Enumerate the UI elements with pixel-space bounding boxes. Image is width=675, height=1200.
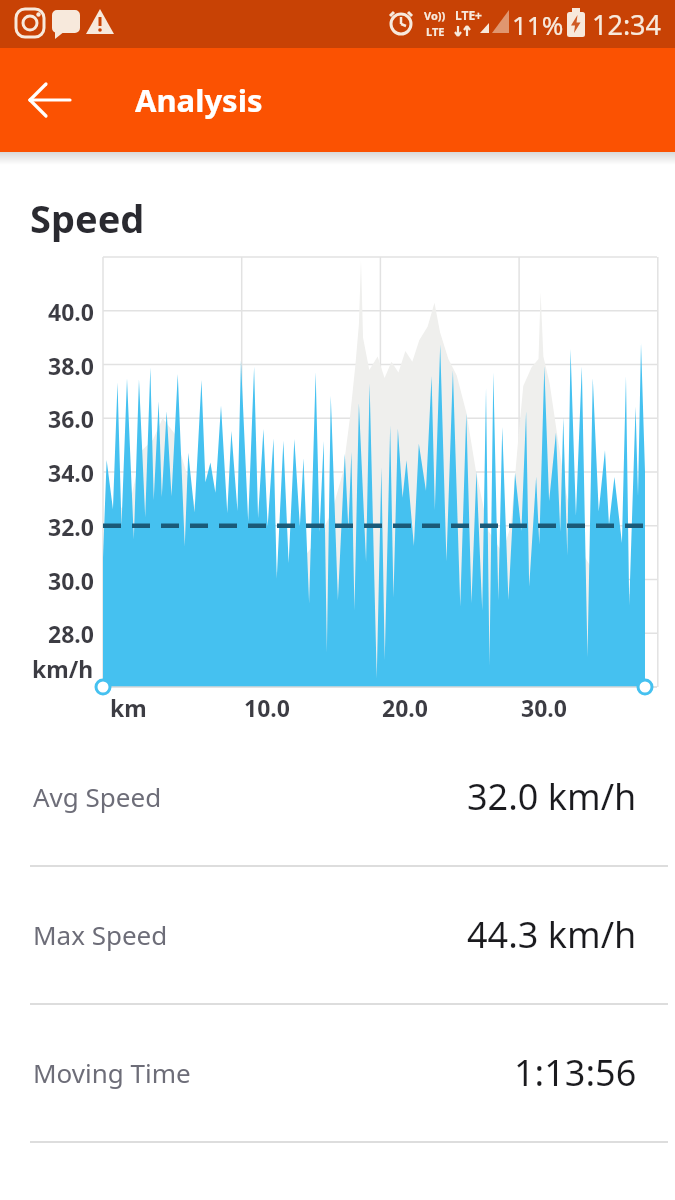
staticText: km (110, 692, 147, 720)
staticText: Max Speed (33, 917, 168, 952)
staticText: LTE (426, 24, 445, 39)
staticText: Analysis (135, 79, 263, 121)
staticText: km/h (32, 653, 94, 683)
staticText: 30.0 (521, 692, 567, 720)
staticText: Moving Time (33, 1055, 191, 1090)
button[interactable]: Moving Time (0, 1003, 675, 1141)
staticText: 40.0 (48, 296, 94, 326)
staticText: 36.0 (48, 403, 94, 433)
button[interactable]: Max Speed (0, 865, 675, 1003)
staticText: 12:34 (592, 6, 662, 43)
staticText: 30.0 (48, 565, 94, 595)
staticText: 1:13:56 (514, 1048, 637, 1097)
staticText: 11% (512, 7, 564, 42)
staticText: 34.0 (48, 457, 94, 487)
staticText: 28.0 (48, 618, 94, 648)
staticText: 44.3 km/h (467, 910, 637, 959)
staticText: LTE+ (455, 7, 482, 23)
staticText: Speed (30, 192, 145, 244)
staticText: 10.0 (244, 692, 290, 720)
staticText: 38.0 (48, 350, 94, 380)
staticText: Avg Speed (33, 779, 162, 814)
staticText: 32.0 km/h (467, 772, 637, 821)
button[interactable]: Avg Speed (0, 727, 675, 865)
staticText: 32.0 (48, 511, 94, 541)
staticText: 20.0 (382, 692, 428, 720)
button[interactable] (14, 64, 86, 136)
staticText: Vo)) (424, 8, 446, 23)
